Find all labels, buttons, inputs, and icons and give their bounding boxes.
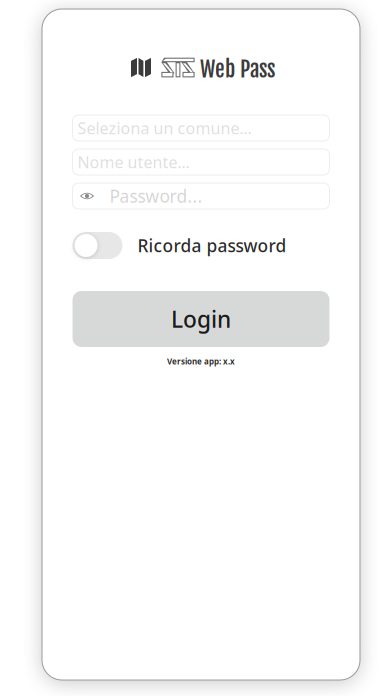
staticText: Password...: [109, 184, 202, 207]
button[interactable]: Nome utente...: [72, 149, 329, 175]
staticText: Nome utente...: [77, 151, 189, 173]
button[interactable]: Password...: [72, 183, 329, 209]
staticText: Seleziona un comune...: [77, 117, 251, 139]
button[interactable]: Login: [72, 291, 329, 347]
button[interactable]: Seleziona un comune...: [72, 115, 329, 141]
staticText: Login: [171, 304, 231, 334]
button[interactable]: Ricorda password: [72, 232, 122, 259]
staticText: Web Pass: [200, 56, 275, 83]
staticText: Ricorda password: [137, 234, 286, 257]
staticText: Versione app: x.x: [167, 356, 235, 367]
